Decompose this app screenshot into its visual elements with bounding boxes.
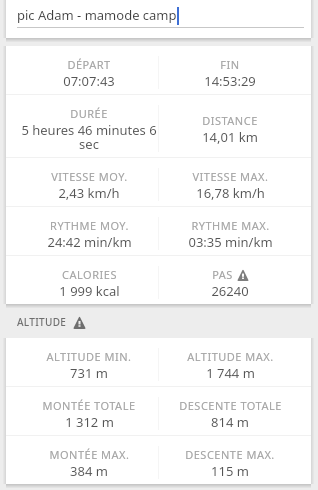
- staticText: ALTITUDE: [17, 315, 67, 329]
- staticText: ALTITUDE MIN.: [46, 349, 132, 364]
- staticText: 14,01 km: [202, 128, 258, 146]
- other: Avertissement altitude: [73, 316, 86, 329]
- staticText: MONTÉE MAX.: [49, 447, 130, 462]
- staticText: DESCENTE MAX.: [185, 447, 275, 462]
- staticText: 814 m: [211, 413, 249, 431]
- button[interactable]: DURÉE: [6, 95, 158, 157]
- staticText: FIN: [220, 57, 240, 72]
- staticText: 14:53:29: [204, 72, 256, 90]
- staticText: ALTITUDE MAX.: [187, 349, 274, 364]
- staticText: 5 heures 46 minutes 6 sec: [20, 121, 158, 153]
- staticText: 1 999 kcal: [59, 282, 120, 300]
- staticText: RYTHME MAX.: [191, 218, 270, 233]
- staticText: MONTÉE TOTALE: [42, 398, 136, 413]
- staticText: 2,43 km/h: [58, 184, 120, 202]
- button[interactable]: PAS: [159, 256, 311, 304]
- button[interactable]: ALTITUDE: [17, 315, 318, 329]
- staticText: 1 312 m: [65, 413, 114, 431]
- staticText: PAS: [212, 267, 233, 282]
- button[interactable]: DISTANCE: [159, 102, 311, 150]
- staticText: 26240: [211, 282, 249, 300]
- staticText: 03:35 min/km: [188, 233, 273, 251]
- staticText: RYTHME MOY.: [50, 218, 129, 233]
- other: Avertissement: [237, 269, 249, 281]
- button[interactable]: RYTHME MAX.: [159, 207, 311, 255]
- button[interactable]: DESCENTE MAX.: [159, 436, 311, 484]
- staticText: DÉPART: [67, 57, 111, 72]
- staticText: 384 m: [70, 462, 108, 480]
- staticText: CALORIES: [62, 267, 117, 282]
- staticText: DISTANCE: [202, 113, 258, 128]
- button[interactable]: RYTHME MOY.: [6, 207, 158, 255]
- staticText: DURÉE: [70, 106, 108, 121]
- button[interactable]: DÉPART: [6, 46, 158, 94]
- staticText: 731 m: [70, 364, 108, 382]
- button[interactable]: ALTITUDE MIN.: [6, 338, 158, 386]
- staticText: VITESSE MAX.: [192, 169, 269, 184]
- staticText: 07:07:43: [63, 72, 115, 90]
- button[interactable]: DESCENTE TOTALE: [159, 387, 311, 435]
- staticText: 115 m: [211, 462, 249, 480]
- button[interactable]: VITESSE MAX.: [159, 158, 311, 206]
- button[interactable]: FIN: [159, 46, 311, 94]
- staticText: 16,78 km/h: [196, 184, 265, 202]
- staticText: 1 744 m: [206, 364, 255, 382]
- button[interactable]: pic Adam - mamode camp: [17, 0, 304, 28]
- staticText: VITESSE MOY.: [51, 169, 128, 184]
- button[interactable]: MONTÉE MAX.: [6, 436, 158, 484]
- button[interactable]: MONTÉE TOTALE: [6, 387, 158, 435]
- button[interactable]: ALTITUDE MAX.: [159, 338, 311, 386]
- staticText: DESCENTE TOTALE: [179, 398, 282, 413]
- staticText: 24:42 min/km: [47, 233, 132, 251]
- button[interactable]: CALORIES: [6, 256, 158, 304]
- button[interactable]: VITESSE MOY.: [6, 158, 158, 206]
- staticText: pic Adam - mamode camp: [17, 6, 177, 24]
